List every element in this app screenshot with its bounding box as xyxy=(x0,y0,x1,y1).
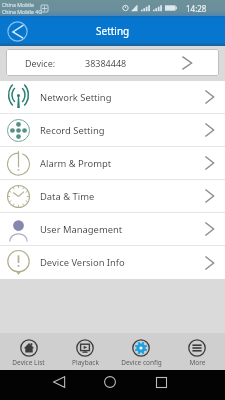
staticText: 38384448 xyxy=(85,57,127,69)
button[interactable]: More xyxy=(169,333,225,370)
button[interactable]: Alarm & Prompt xyxy=(0,147,225,179)
button[interactable]: Recent apps xyxy=(149,370,174,395)
staticText: Device Version Info xyxy=(40,256,125,269)
staticText: User Management xyxy=(40,223,123,236)
button[interactable]: Home xyxy=(97,369,122,394)
staticText: Playback xyxy=(72,358,99,367)
staticText: Device List xyxy=(12,358,45,367)
staticText: Setting xyxy=(96,24,130,38)
staticText: Data & Time xyxy=(40,190,95,203)
button[interactable]: Device List xyxy=(0,333,57,370)
staticText: Device: xyxy=(25,57,56,69)
staticText: China Mobile 4G xyxy=(2,8,43,15)
button[interactable]: Back xyxy=(5,19,29,43)
staticText: Record Setting xyxy=(40,124,105,137)
staticText: Network Setting xyxy=(40,91,112,104)
button[interactable]: Device config xyxy=(113,333,169,370)
staticText: More xyxy=(189,358,206,367)
staticText: Device config xyxy=(121,358,162,367)
button[interactable]: Network Setting xyxy=(0,81,225,113)
button[interactable]: Back xyxy=(46,369,71,394)
staticText: Alarm & Prompt xyxy=(40,157,112,170)
button[interactable]: Playback xyxy=(57,333,113,370)
staticText: China Mobile xyxy=(2,1,34,8)
button[interactable]: User Management xyxy=(0,213,225,245)
staticText: 14:28 xyxy=(186,3,207,14)
button[interactable]: Data & Time xyxy=(0,180,225,212)
button[interactable]: Device: xyxy=(6,49,219,76)
button[interactable]: Device Version Info xyxy=(0,246,225,279)
button[interactable]: Record Setting xyxy=(0,114,225,146)
